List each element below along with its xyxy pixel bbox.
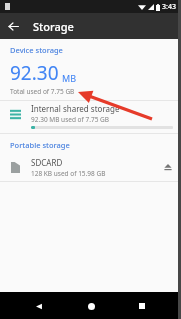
staticText: 92.30 MB used of 7.75 GB <box>31 115 110 124</box>
staticText: 92.30 <box>10 60 59 86</box>
button[interactable]: Back <box>26 293 52 319</box>
staticText: Total used of 7.75 GB <box>10 87 75 96</box>
button[interactable]: SDCARD <box>0 153 181 181</box>
staticText: 3:43 <box>162 2 176 12</box>
button[interactable]: Back <box>0 13 26 39</box>
button[interactable]: Internal shared storage <box>0 100 181 134</box>
staticText: Portable storage <box>10 140 70 150</box>
staticText: Storage <box>33 19 74 34</box>
staticText: SDCARD <box>31 157 63 168</box>
button[interactable]: Recents <box>129 293 155 319</box>
staticText: 128 KB used of 15.98 GB <box>31 169 106 178</box>
staticText: Internal shared storage <box>31 103 120 114</box>
button[interactable]: Eject <box>158 157 178 177</box>
staticText: MB <box>62 72 77 84</box>
staticText: Device storage <box>10 45 63 55</box>
button[interactable]: Home <box>78 293 104 319</box>
